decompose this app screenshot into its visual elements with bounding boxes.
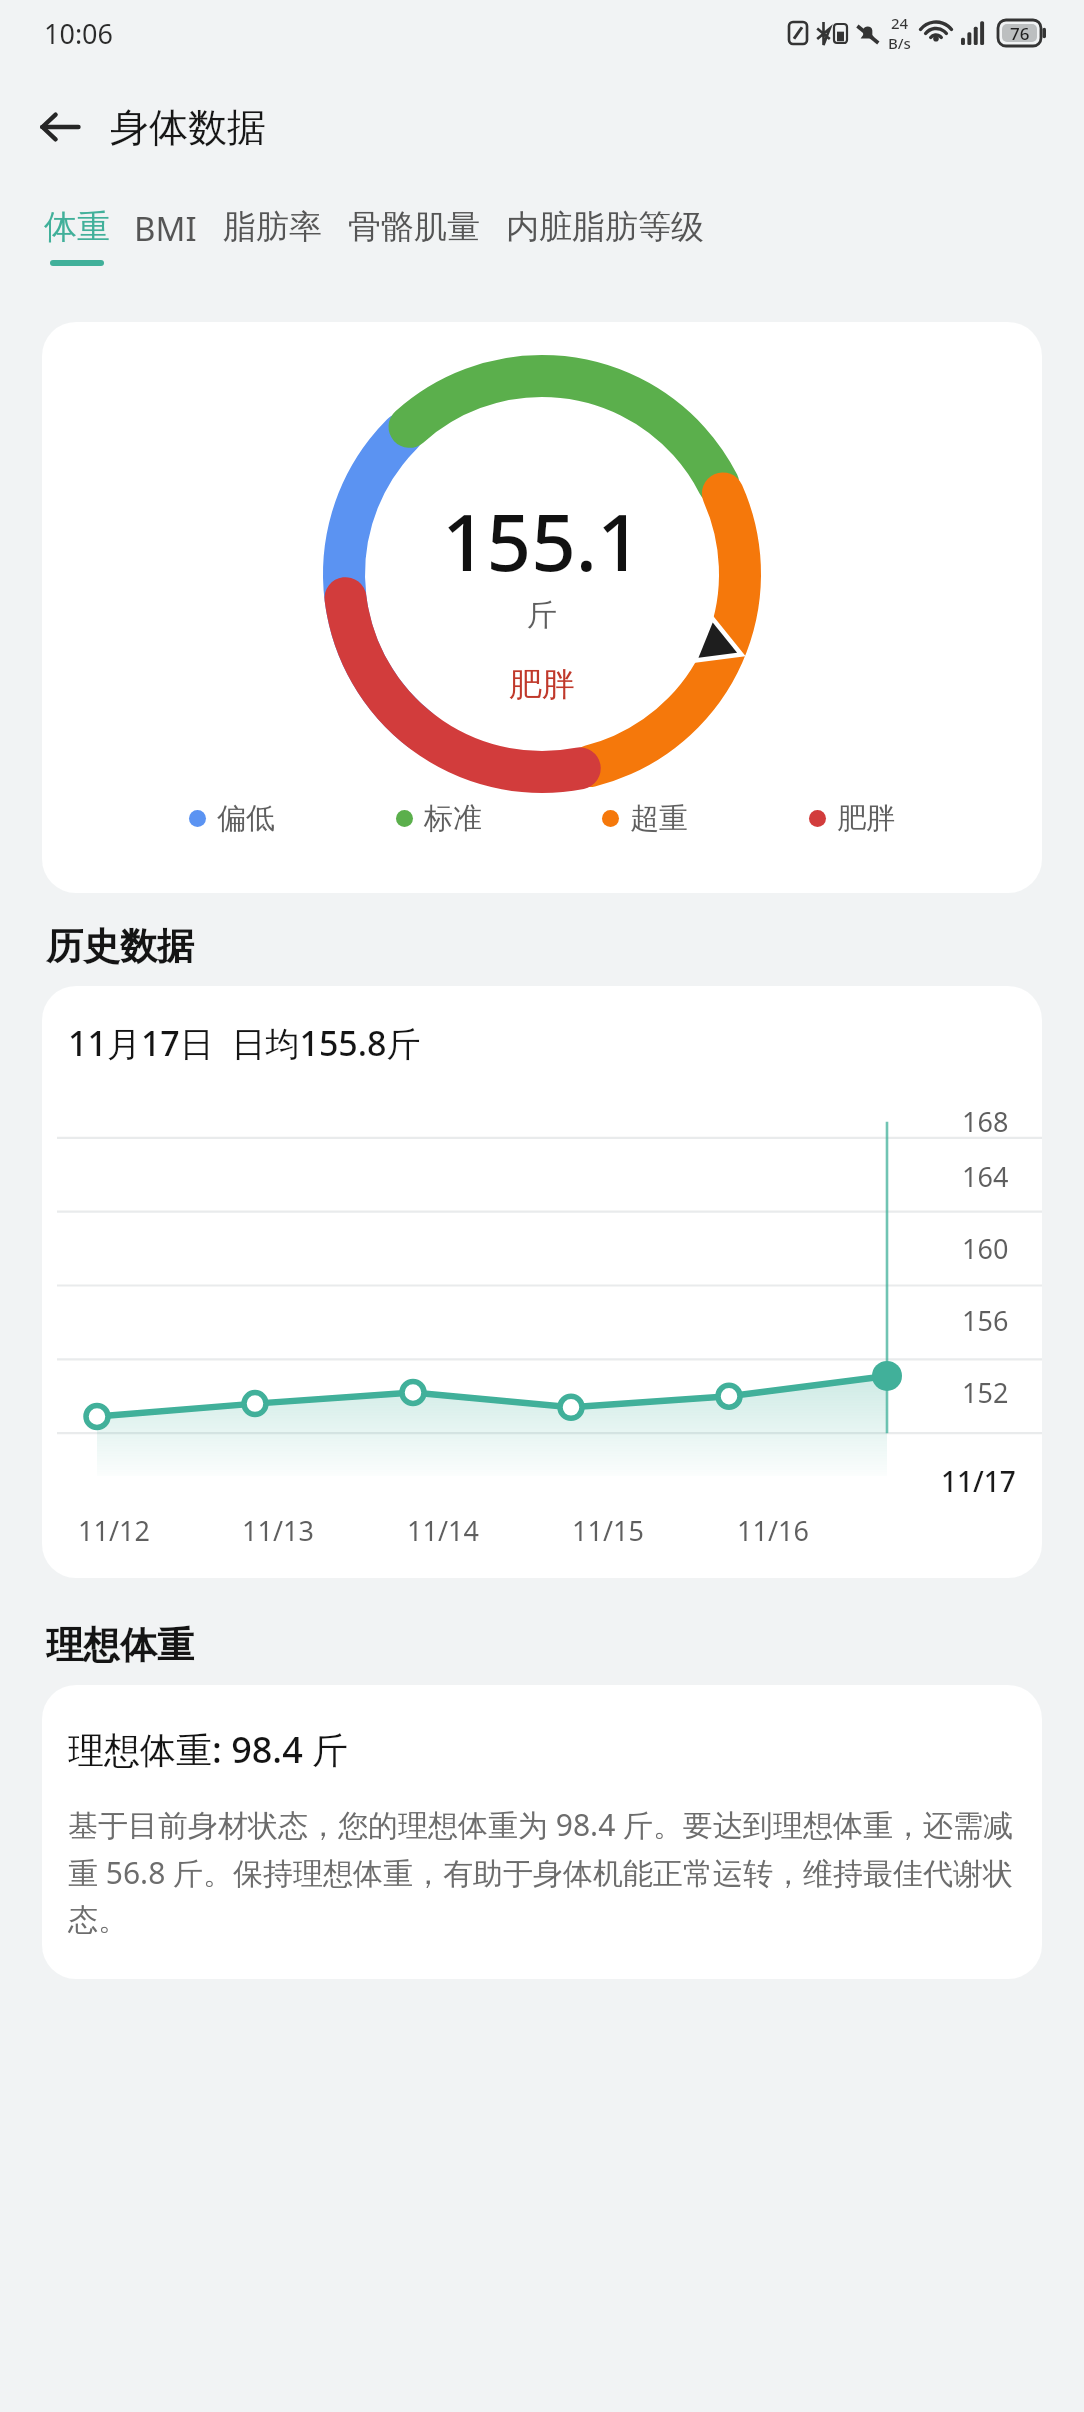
staticText: B/s (888, 33, 911, 53)
button[interactable]: 脂肪率 (223, 188, 322, 260)
staticText: 11/16 (737, 1512, 809, 1549)
staticText: 脂肪率 (223, 206, 322, 248)
staticText: 身体数据 (110, 103, 266, 152)
button[interactable]: 理想体重: 98.4 斤 (42, 1685, 1042, 1979)
button[interactable]: 骨骼肌量 (348, 188, 480, 260)
button[interactable]: Back (26, 93, 94, 161)
staticText: 168 (962, 1103, 1009, 1140)
button[interactable]: 偏低 (189, 800, 275, 837)
staticText: 肥胖 (509, 664, 575, 706)
button[interactable]: 内脏脂肪等级 (506, 188, 704, 260)
staticText: 155.1 (442, 488, 642, 594)
staticText: 理想体重 (46, 1622, 194, 1669)
staticText: 11月17日 日均155.8斤 (68, 1020, 421, 1066)
staticText: 11/17 (941, 1462, 1016, 1500)
button[interactable]: BMI (134, 188, 197, 263)
button[interactable]: 11月17日 日均155.8斤 (42, 986, 1042, 1578)
staticText: 160 (962, 1230, 1009, 1267)
staticText: 152 (962, 1374, 1009, 1411)
staticText: 骨骼肌量 (348, 206, 480, 248)
staticText: 11/14 (407, 1512, 479, 1549)
staticText: 肥胖 (837, 800, 895, 837)
staticText: 76 (1010, 22, 1030, 45)
staticText: 历史数据 (46, 923, 194, 970)
staticText: 体重 (44, 206, 110, 248)
staticText: 超重 (630, 800, 688, 837)
staticText: 标准 (424, 800, 482, 837)
staticText: 11/12 (78, 1512, 150, 1549)
staticText: 斤 (527, 596, 557, 634)
staticText: 164 (962, 1158, 1009, 1195)
button[interactable]: 155.1 (42, 322, 1042, 893)
staticText: 10:06 (44, 15, 114, 52)
staticText: 156 (962, 1302, 1009, 1339)
staticText: 24 (891, 13, 909, 33)
staticText: 偏低 (217, 800, 275, 837)
button[interactable]: 超重 (602, 800, 688, 837)
staticText: BMI (134, 206, 197, 251)
button[interactable]: 标准 (396, 800, 482, 837)
staticText: 11/15 (572, 1512, 644, 1549)
staticText: 基于目前身材状态，您的理想体重为 98.4 斤。要达到理想体重，还需减重 56.… (68, 1804, 1016, 1939)
button[interactable]: 体重 (44, 188, 110, 266)
button[interactable]: 肥胖 (809, 800, 895, 837)
staticText: 理想体重: 98.4 斤 (68, 1725, 349, 1774)
staticText: 内脏脂肪等级 (506, 206, 704, 248)
staticText: 11/13 (242, 1512, 314, 1549)
